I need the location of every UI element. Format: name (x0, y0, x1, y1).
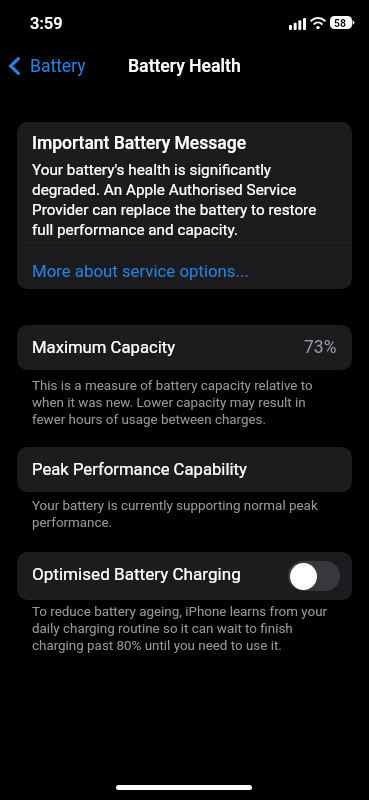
staticText: 73% (304, 337, 337, 358)
staticText: Important Battery Message (32, 132, 247, 153)
button[interactable]: More about service options... (17, 246, 352, 289)
staticText: Battery Health (128, 56, 241, 77)
staticText: Battery (30, 56, 86, 77)
button[interactable]: Optimised Battery Charging (288, 561, 340, 591)
staticText: 3:59 (30, 14, 63, 33)
staticText: Maximum Capacity (32, 338, 176, 358)
other: Back (9, 57, 20, 75)
staticText: Your battery's health is significantly d… (32, 160, 338, 240)
staticText: To reduce battery ageing, iPhone learns … (32, 603, 338, 654)
staticText: Your battery is currently supporting nor… (32, 497, 338, 531)
button[interactable]: Peak Performance Capability (17, 447, 352, 492)
staticText: This is a measure of battery capacity re… (32, 377, 338, 428)
staticText: More about service options... (32, 261, 249, 281)
staticText: Optimised Battery Charging (32, 564, 241, 584)
button[interactable]: Back (3, 51, 94, 81)
staticText: 58 (333, 17, 347, 29)
staticText: Peak Performance Capability (32, 460, 247, 480)
button[interactable]: Maximum Capacity (17, 325, 352, 370)
